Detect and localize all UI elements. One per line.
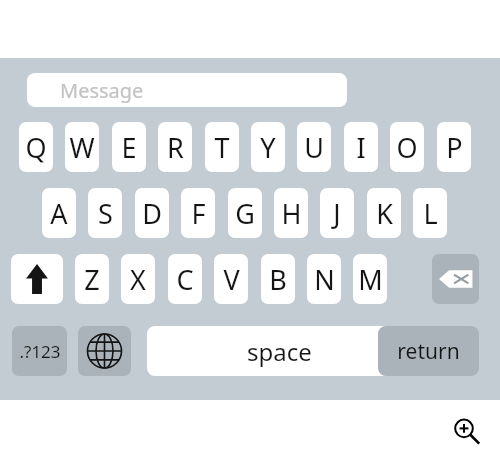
- button[interactable]: return: [378, 326, 479, 376]
- button[interactable]: space: [147, 326, 412, 376]
- button[interactable]: .?123: [12, 326, 67, 376]
- button[interactable]: Change keyboard language: [78, 326, 131, 376]
- button[interactable]: B: [261, 254, 295, 304]
- button[interactable]: Zoom in: [448, 414, 488, 454]
- staticText: V: [223, 261, 240, 298]
- button[interactable]: M: [353, 254, 387, 304]
- button[interactable]: Shift: [11, 254, 63, 304]
- staticText: Y: [260, 129, 276, 166]
- staticText: K: [376, 195, 393, 232]
- staticText: space: [247, 335, 312, 368]
- button[interactable]: P: [437, 122, 471, 172]
- staticText: S: [98, 195, 113, 232]
- button[interactable]: K: [367, 188, 401, 238]
- button[interactable]: Message: [27, 73, 347, 107]
- button[interactable]: C: [168, 254, 202, 304]
- staticText: W: [69, 129, 95, 166]
- staticText: Z: [84, 261, 100, 298]
- staticText: F: [191, 195, 206, 232]
- staticText: X: [130, 261, 146, 298]
- staticText: I: [356, 129, 366, 166]
- staticText: D: [142, 195, 162, 232]
- button[interactable]: U: [297, 122, 331, 172]
- staticText: C: [176, 261, 194, 298]
- staticText: H: [281, 195, 302, 232]
- button[interactable]: V: [214, 254, 248, 304]
- button[interactable]: G: [228, 188, 262, 238]
- staticText: O: [396, 129, 418, 166]
- button[interactable]: R: [158, 122, 192, 172]
- staticText: L: [423, 195, 438, 232]
- staticText: U: [304, 129, 324, 166]
- staticText: P: [446, 129, 463, 166]
- button[interactable]: Q: [19, 122, 53, 172]
- staticText: return: [397, 337, 460, 366]
- button[interactable]: Z: [75, 254, 109, 304]
- button[interactable]: W: [65, 122, 99, 172]
- button[interactable]: T: [205, 122, 239, 172]
- staticText: G: [235, 195, 255, 232]
- staticText: Q: [25, 129, 47, 166]
- staticText: N: [314, 261, 335, 298]
- staticText: .?123: [19, 340, 61, 363]
- button[interactable]: D: [135, 188, 169, 238]
- staticText: Message: [60, 77, 144, 104]
- button[interactable]: J: [320, 188, 354, 238]
- button[interactable]: I: [344, 122, 378, 172]
- staticText: T: [214, 129, 230, 166]
- button[interactable]: Backspace: [432, 254, 479, 304]
- staticText: B: [269, 261, 287, 298]
- button[interactable]: H: [274, 188, 308, 238]
- button[interactable]: S: [88, 188, 122, 238]
- button[interactable]: A: [42, 188, 76, 238]
- staticText: M: [358, 261, 383, 298]
- staticText: J: [333, 195, 341, 232]
- button[interactable]: N: [307, 254, 341, 304]
- button[interactable]: L: [413, 188, 447, 238]
- button[interactable]: F: [181, 188, 215, 238]
- button[interactable]: O: [390, 122, 424, 172]
- button[interactable]: E: [112, 122, 146, 172]
- button[interactable]: X: [121, 254, 155, 304]
- staticText: A: [50, 195, 68, 232]
- staticText: R: [167, 129, 184, 166]
- staticText: E: [121, 129, 137, 166]
- button[interactable]: Y: [251, 122, 285, 172]
